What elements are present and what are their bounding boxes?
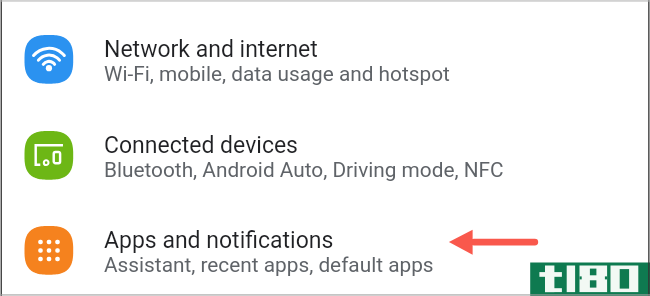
button[interactable]: Network and internet bbox=[0, 23, 650, 97]
staticText: Bluetooth, Android Auto, Driving mode, N… bbox=[104, 158, 504, 182]
staticText: Apps and notifications bbox=[104, 227, 334, 254]
staticText: Connected devices bbox=[104, 132, 298, 159]
staticText: Network and internet bbox=[104, 36, 318, 63]
staticText: Wi-Fi, mobile, data usage and hotspot bbox=[104, 62, 450, 86]
staticText: Assistant, recent apps, default apps bbox=[104, 253, 434, 277]
other: Annotation arrow bbox=[0, 0, 650, 296]
button[interactable]: Apps and notifications bbox=[0, 214, 650, 288]
button[interactable]: Connected devices bbox=[0, 119, 650, 193]
